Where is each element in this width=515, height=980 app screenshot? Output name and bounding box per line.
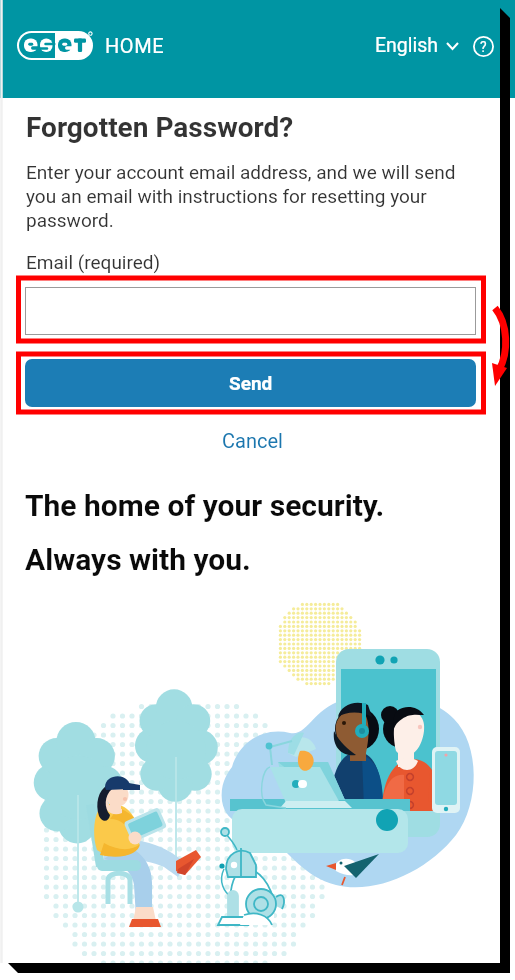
staticText: Enter your account email address, and we… xyxy=(26,161,468,232)
button[interactable]: English xyxy=(372,30,462,61)
staticText: English xyxy=(375,34,439,57)
staticText: Cancel xyxy=(222,429,283,452)
staticText: Send xyxy=(229,372,273,394)
button[interactable] xyxy=(25,287,476,335)
staticText: Email (required) xyxy=(26,251,161,273)
staticText: Forgotten Password? xyxy=(26,111,294,144)
staticText: ? xyxy=(480,39,487,55)
staticText: HOME xyxy=(105,34,165,57)
button[interactable]: Send xyxy=(25,359,476,407)
button[interactable]: Help xyxy=(473,36,494,57)
staticText: Always with you. xyxy=(25,542,251,577)
button[interactable]: Cancel xyxy=(214,426,291,455)
staticText: The home of your security. xyxy=(25,488,385,523)
